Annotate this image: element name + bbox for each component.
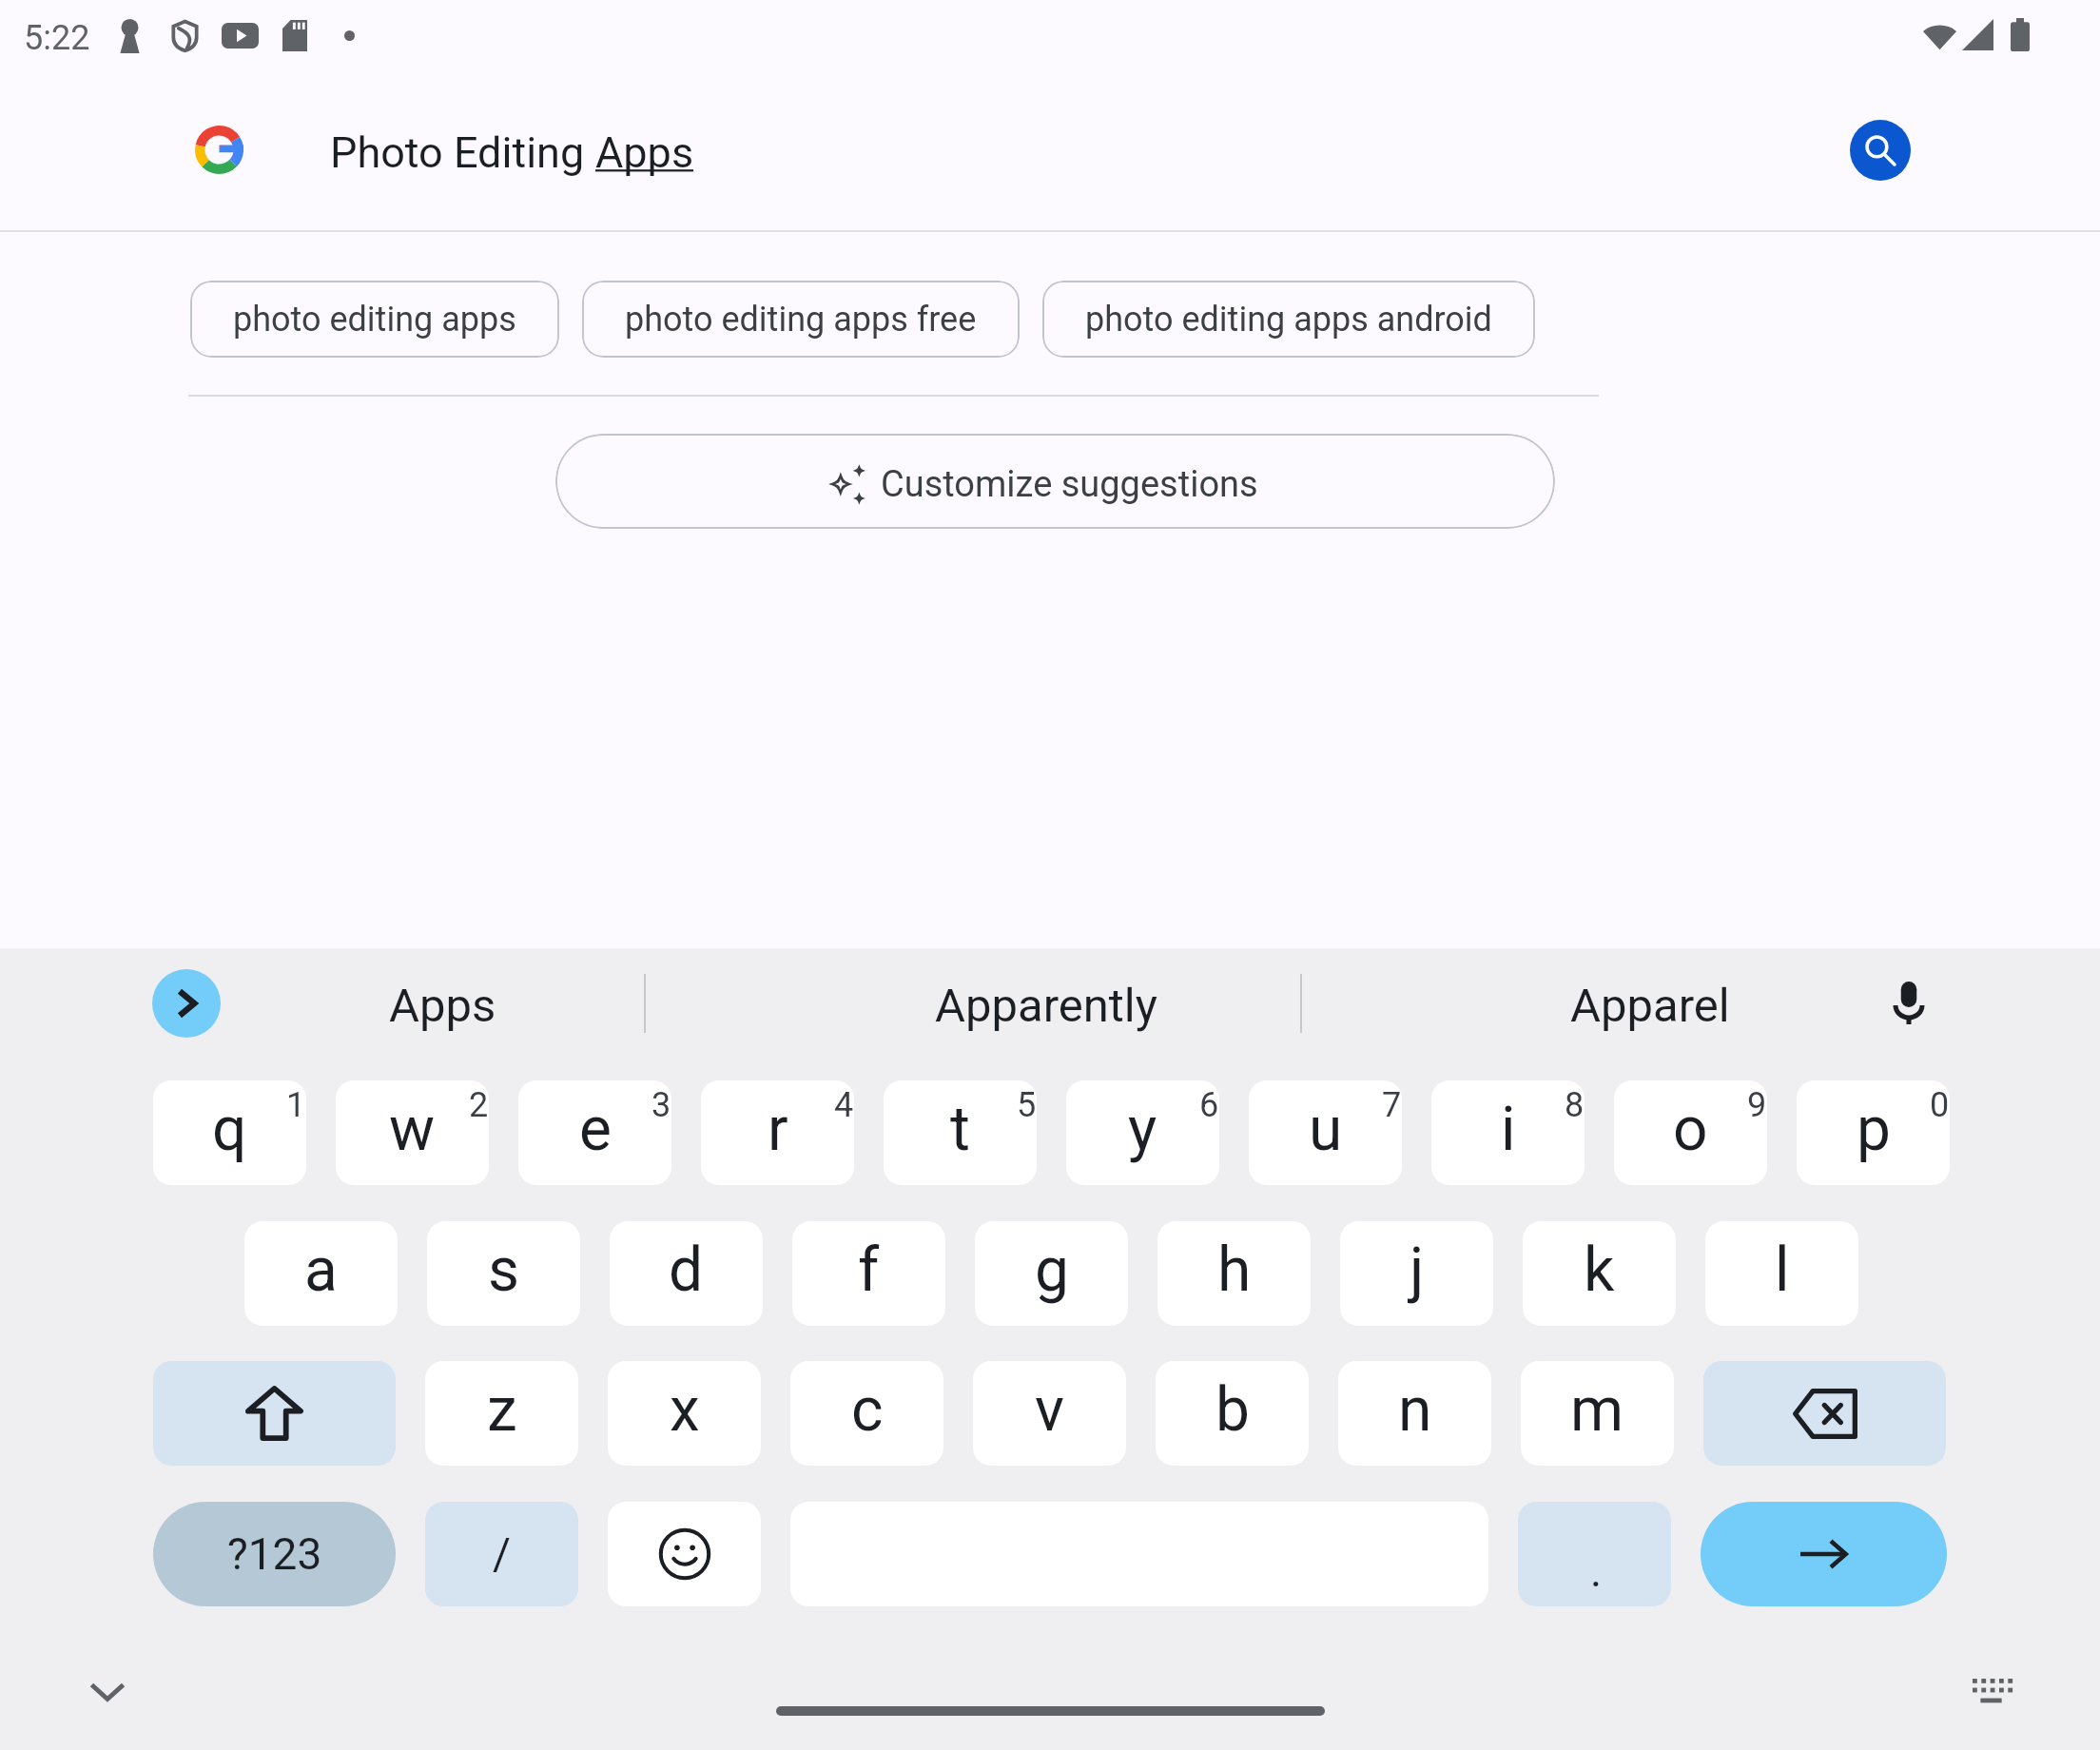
staticText: k (1584, 1235, 1615, 1306)
staticText: Customize suggestions (881, 463, 1258, 506)
button[interactable]: s (427, 1221, 580, 1326)
button[interactable]: photo editing apps android (1042, 281, 1535, 358)
button[interactable]: / (425, 1502, 578, 1606)
button[interactable]: d (610, 1221, 763, 1326)
button[interactable]: e (518, 1080, 671, 1185)
button[interactable]: z (425, 1361, 578, 1466)
button[interactable]: i (1431, 1080, 1585, 1185)
button[interactable]: v (973, 1361, 1126, 1466)
button[interactable]: Backspace (1703, 1361, 1946, 1466)
staticText: ?123 (227, 1528, 322, 1580)
staticText: p (1857, 1094, 1891, 1165)
staticText: f (858, 1235, 880, 1306)
staticText: photo editing apps free (625, 300, 977, 340)
staticText: a (304, 1235, 338, 1306)
staticText: b (1215, 1374, 1250, 1446)
button[interactable]: j (1340, 1221, 1493, 1326)
button[interactable]: l (1705, 1221, 1858, 1326)
staticText: j (1410, 1235, 1425, 1306)
button[interactable]: p (1797, 1080, 1950, 1185)
staticText: i (1501, 1094, 1516, 1165)
button[interactable]: Apps (221, 940, 664, 1072)
button[interactable]: Enter (1701, 1502, 1947, 1606)
staticText: e (579, 1094, 612, 1165)
staticText: l (1775, 1235, 1790, 1306)
button[interactable]: Apparently (666, 940, 1427, 1072)
staticText: x (670, 1374, 700, 1446)
staticText: 1 (286, 1085, 306, 1125)
button[interactable]: c (790, 1361, 943, 1466)
staticText: 0 (1930, 1085, 1950, 1125)
button[interactable]: m (1521, 1361, 1674, 1466)
staticText: m (1570, 1374, 1624, 1446)
staticText: Photo Editing (330, 127, 595, 178)
button[interactable]: h (1157, 1221, 1311, 1326)
button[interactable]: Change keyboard (1964, 1662, 2021, 1720)
button[interactable]: Search (1850, 120, 1911, 181)
staticText: photo editing apps (233, 300, 516, 340)
staticText: d (669, 1235, 704, 1306)
staticText: 5:22 (24, 18, 90, 58)
staticText: 6 (1199, 1085, 1219, 1125)
staticText: s (488, 1235, 520, 1306)
staticText: y (1128, 1094, 1157, 1165)
staticText: t (950, 1094, 970, 1165)
staticText: v (1035, 1374, 1064, 1446)
staticText: Apparently (935, 979, 1157, 1033)
button[interactable]: Hide keyboard (77, 1662, 138, 1722)
button[interactable]: x (608, 1361, 761, 1466)
button[interactable]: Shift (153, 1361, 396, 1466)
button[interactable]: . (1518, 1502, 1671, 1606)
staticText: 5 (1017, 1085, 1037, 1125)
button[interactable]: ?123 (153, 1502, 396, 1606)
button[interactable]: photo editing apps free (582, 281, 1020, 358)
button[interactable]: photo editing apps (190, 281, 559, 358)
button[interactable]: Emoji (608, 1502, 761, 1606)
staticText: o (1673, 1094, 1708, 1165)
staticText: u (1309, 1094, 1343, 1165)
staticText: . (1590, 1546, 1603, 1597)
button[interactable]: q (153, 1080, 306, 1185)
staticText: 2 (469, 1085, 489, 1125)
staticText: Apps (595, 127, 694, 178)
staticText: c (851, 1374, 884, 1446)
button[interactable]: n (1338, 1361, 1491, 1466)
button[interactable]: Apparel (1429, 940, 1872, 1072)
button[interactable]: b (1156, 1361, 1309, 1466)
staticText: q (212, 1094, 247, 1165)
staticText: 9 (1747, 1085, 1767, 1125)
button[interactable]: t (884, 1080, 1037, 1185)
button[interactable]: Customize suggestions (555, 434, 1555, 529)
button[interactable]: f (792, 1221, 945, 1326)
button[interactable]: g (975, 1221, 1128, 1326)
button[interactable]: y (1066, 1080, 1219, 1185)
staticText: 7 (1382, 1085, 1402, 1125)
staticText: r (768, 1094, 788, 1165)
button[interactable]: k (1523, 1221, 1676, 1326)
button[interactable]: r (701, 1080, 854, 1185)
button[interactable]: Voice input (1879, 973, 1938, 1032)
staticText: photo editing apps android (1085, 300, 1492, 340)
staticText: z (487, 1374, 517, 1446)
staticText: / (493, 1528, 511, 1580)
staticText: h (1217, 1235, 1252, 1306)
staticText: 8 (1565, 1085, 1585, 1125)
button[interactable]: u (1249, 1080, 1402, 1185)
staticText: 3 (651, 1085, 671, 1125)
staticText: n (1398, 1374, 1432, 1446)
staticText: Apps (389, 979, 496, 1033)
button[interactable]: More suggestions (152, 969, 221, 1038)
staticText: g (1035, 1235, 1069, 1306)
button[interactable]: w (336, 1080, 489, 1185)
button[interactable]: a (244, 1221, 398, 1326)
staticText: 4 (834, 1085, 854, 1125)
staticText: Apparel (1570, 979, 1730, 1033)
button[interactable]: o (1614, 1080, 1767, 1185)
staticText: w (389, 1094, 436, 1165)
